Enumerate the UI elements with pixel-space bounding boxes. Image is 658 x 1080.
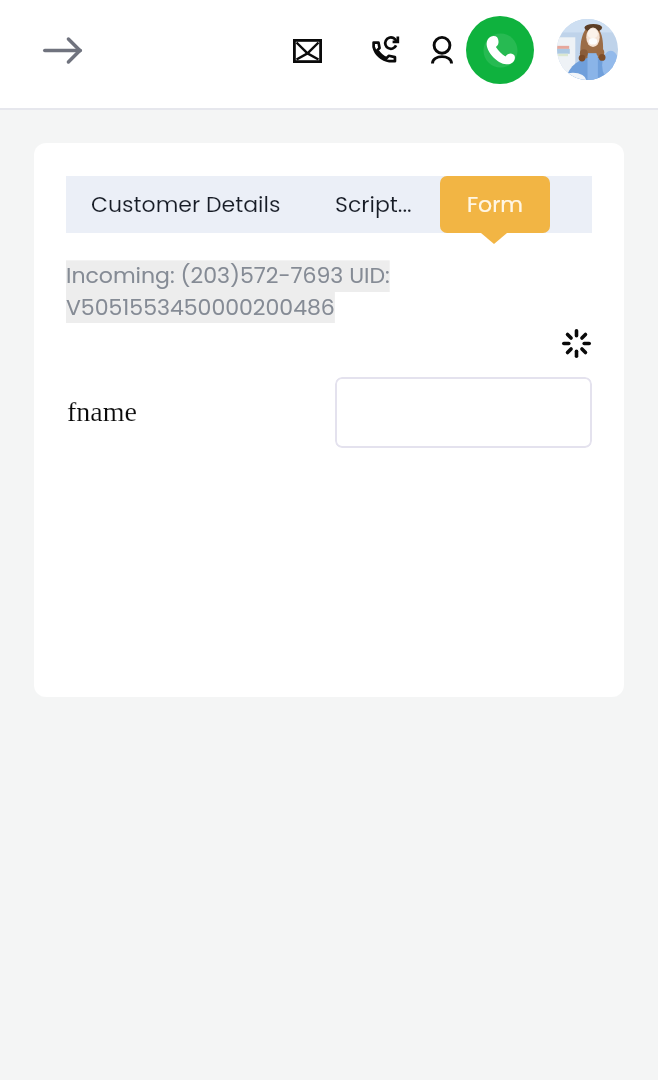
button[interactable]: fname input field <box>335 377 592 448</box>
button[interactable]: Customer Details <box>66 176 306 233</box>
button[interactable]: Account <box>557 19 618 80</box>
staticText: Form <box>467 189 524 220</box>
button[interactable]: Forward <box>34 22 91 79</box>
staticText: Customer Details <box>91 189 281 220</box>
button[interactable]: Profile <box>419 28 465 74</box>
button[interactable]: Form <box>440 176 550 233</box>
button[interactable]: Script... <box>306 176 440 233</box>
button[interactable]: Mail <box>284 28 330 74</box>
button[interactable]: Call <box>466 16 534 84</box>
staticText: Incoming: (203)572-7693 UID: V5051553450… <box>66 260 390 323</box>
staticText: Script... <box>335 189 412 220</box>
button[interactable]: Call history <box>362 25 408 71</box>
staticText: fname <box>67 396 137 427</box>
